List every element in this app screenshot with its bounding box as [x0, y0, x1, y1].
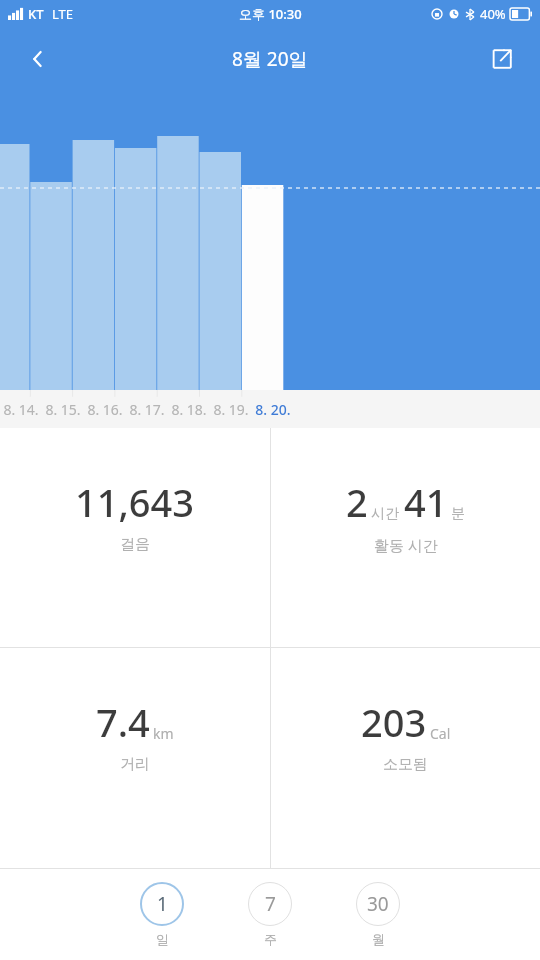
button[interactable]: 2 — [271, 428, 540, 647]
staticText: 8. 17. — [129, 400, 165, 419]
staticText: 7 — [265, 891, 276, 917]
staticText: 주 — [264, 931, 277, 947]
staticText: 걸음 — [120, 535, 150, 554]
staticText: 8. 19. — [213, 400, 249, 419]
staticText: 8. 15. — [45, 400, 81, 419]
staticText: 8. 16. — [87, 400, 123, 419]
staticText: 일 — [156, 931, 169, 947]
staticText: 활동 시간 — [374, 535, 438, 555]
staticText: 소모됨 — [383, 755, 428, 774]
button[interactable]: Back — [14, 35, 62, 83]
staticText: KT — [28, 5, 44, 23]
staticText: 월 — [372, 931, 385, 947]
staticText: 1 — [157, 891, 168, 917]
staticText: 30 — [367, 891, 389, 917]
staticText: 8. 18. — [171, 400, 207, 419]
button[interactable]: 30 — [349, 882, 407, 947]
staticText: LTE — [52, 5, 74, 23]
staticText: 11,643 — [75, 476, 195, 528]
staticText: 시간 — [371, 505, 399, 523]
staticText: 8. 14. — [3, 400, 39, 419]
staticText: 분 — [451, 505, 465, 523]
button[interactable]: 1 — [133, 882, 191, 947]
staticText: km — [153, 724, 174, 743]
staticText: 7.4 — [96, 696, 150, 748]
staticText: 41 — [404, 476, 448, 528]
staticText: Cal — [430, 724, 451, 743]
button[interactable]: 7.4 — [0, 648, 270, 868]
staticText: 거리 — [120, 755, 150, 774]
staticText: 오후 10:30 — [239, 5, 302, 23]
staticText: 40% — [480, 5, 506, 23]
staticText: 8월 20일 — [232, 46, 308, 72]
button[interactable]: 11,643 — [0, 428, 270, 647]
staticText: 8. 20. — [255, 400, 291, 419]
button[interactable]: 7 — [241, 882, 299, 947]
staticText: 203 — [361, 696, 427, 748]
button[interactable]: Share — [478, 35, 526, 83]
staticText: 2 — [346, 476, 368, 528]
button[interactable]: 203 — [271, 648, 540, 868]
